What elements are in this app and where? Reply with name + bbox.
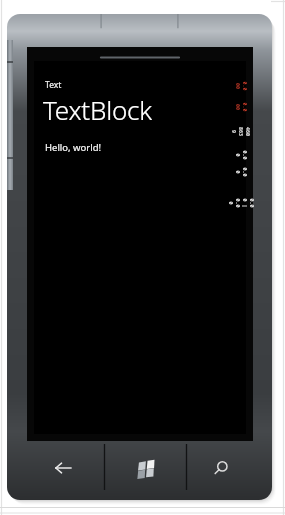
staticText: Hello, world! xyxy=(45,141,102,154)
staticText: TextBlock xyxy=(43,92,152,127)
staticText: 0.00 xyxy=(233,150,247,159)
staticText: 0.00 xyxy=(233,167,247,176)
staticText: 0.000 xyxy=(233,81,247,90)
staticText: Text xyxy=(45,79,62,91)
staticText: 4608639 xyxy=(230,127,251,136)
button[interactable]: Back xyxy=(21,441,104,500)
button[interactable]: Start xyxy=(105,441,186,500)
staticText: 0.00 | 0.00 xyxy=(226,198,254,207)
button[interactable]: Search xyxy=(187,441,258,500)
staticText: 0.000 xyxy=(233,102,247,111)
